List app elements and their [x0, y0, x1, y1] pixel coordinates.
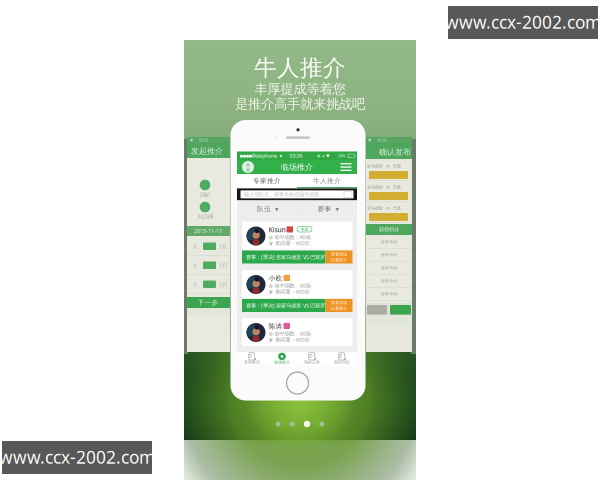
staticText: 临场推介: [274, 360, 290, 364]
button[interactable]: 我的记录: [0, 0, 600, 480]
staticText: ⊛ 命中场数：40场: [268, 234, 310, 241]
staticText: ♛ 购买量：400次: [268, 288, 309, 295]
staticText: 牛人推介: [313, 177, 341, 185]
staticText: 专家: [300, 227, 308, 232]
staticText: 队伍 ▾: [257, 205, 278, 213]
staticText: 2场1: [199, 191, 210, 198]
staticText: 发起推介: [191, 146, 223, 156]
staticText: 小欧: [268, 274, 282, 282]
staticText: 确认发布: [379, 147, 411, 157]
staticText: 比赛推介: [331, 306, 347, 311]
staticText: 比赛推介: [331, 257, 347, 262]
button[interactable]: 临场推介: [0, 0, 600, 480]
button[interactable]: 队伍 ▾: [247, 202, 287, 215]
staticText: 皇马德里 VS 巴塞: [367, 184, 401, 190]
staticText: 临场推介: [281, 162, 313, 172]
staticText: 0: [193, 281, 196, 288]
button[interactable]: 赛事 ▾: [308, 202, 348, 215]
button[interactable]: 竞猜赛况: [0, 0, 600, 480]
staticText: Kisun: [268, 225, 285, 234]
staticText: www.ccx-2002.com: [445, 10, 600, 33]
staticText: 皇马德里 VS 巴塞: [367, 205, 401, 211]
staticText: 我的消息: [334, 360, 350, 364]
staticText: 03:36: [289, 152, 302, 159]
staticText: 20%: [338, 153, 345, 158]
staticText: 1只: [219, 281, 227, 288]
staticText: ▾: [279, 153, 282, 159]
staticText: 推荐号码: [381, 239, 397, 244]
staticText: 输入球队名、赛事名称或编号搜索: [244, 191, 319, 198]
staticText: ●●●●○: [239, 153, 254, 158]
staticText: 1只: [219, 262, 227, 269]
staticText: 3公5球: [197, 213, 213, 220]
staticText: 推荐号码: [381, 291, 397, 296]
staticText: 查看该场: [331, 300, 347, 305]
staticText: 获得积分: [379, 226, 399, 233]
staticText: Pelephone: [252, 152, 277, 159]
staticText: 0: [193, 243, 196, 250]
staticText: ▼ 03:36: [368, 137, 386, 143]
staticText: 查看该场: [331, 252, 347, 257]
staticText: ♛ 购买量：400次: [268, 240, 309, 247]
staticText: 下一步: [197, 298, 218, 307]
staticText: ⊛ 命中场数：40场: [268, 330, 310, 337]
staticText: 皇马德里 VS 巴塞: [367, 163, 401, 169]
staticText: 1只: [219, 243, 227, 250]
staticText: 推荐号码: [381, 278, 397, 283]
staticText: 赛事：[季决] 皇家马德里 VS 巴塞罗那: [246, 302, 330, 309]
staticText: 竞猜赛况: [244, 360, 260, 364]
staticText: 陈涛: [268, 322, 282, 330]
button[interactable]: 我的消息: [0, 0, 600, 480]
staticText: ⊛ 命中场数：40场: [268, 282, 310, 289]
staticText: 赛事 ▾: [317, 205, 338, 213]
staticText: ✻ ◂ ♥: [317, 153, 330, 158]
staticText: 丰厚提成等着您: [254, 81, 345, 97]
staticText: 是推介高手就来挑战吧: [235, 96, 365, 112]
staticText: 牛人推介: [254, 54, 346, 82]
staticText: ▼ 03:36: [190, 137, 208, 143]
staticText: 专家推介: [253, 177, 281, 185]
staticText: 推荐号码: [381, 265, 397, 270]
staticText: ♛ 购买量：400次: [268, 336, 309, 343]
staticText: 2015-11-17: [194, 227, 222, 235]
staticText: www.ccx-2002.com: [0, 445, 155, 468]
staticText: 推荐号码: [381, 252, 397, 257]
staticText: 0: [193, 262, 196, 269]
staticText: 我的记录: [304, 360, 320, 364]
staticText: 赛事：[季决] 皇家马德里 VS 巴塞罗那: [246, 254, 330, 261]
